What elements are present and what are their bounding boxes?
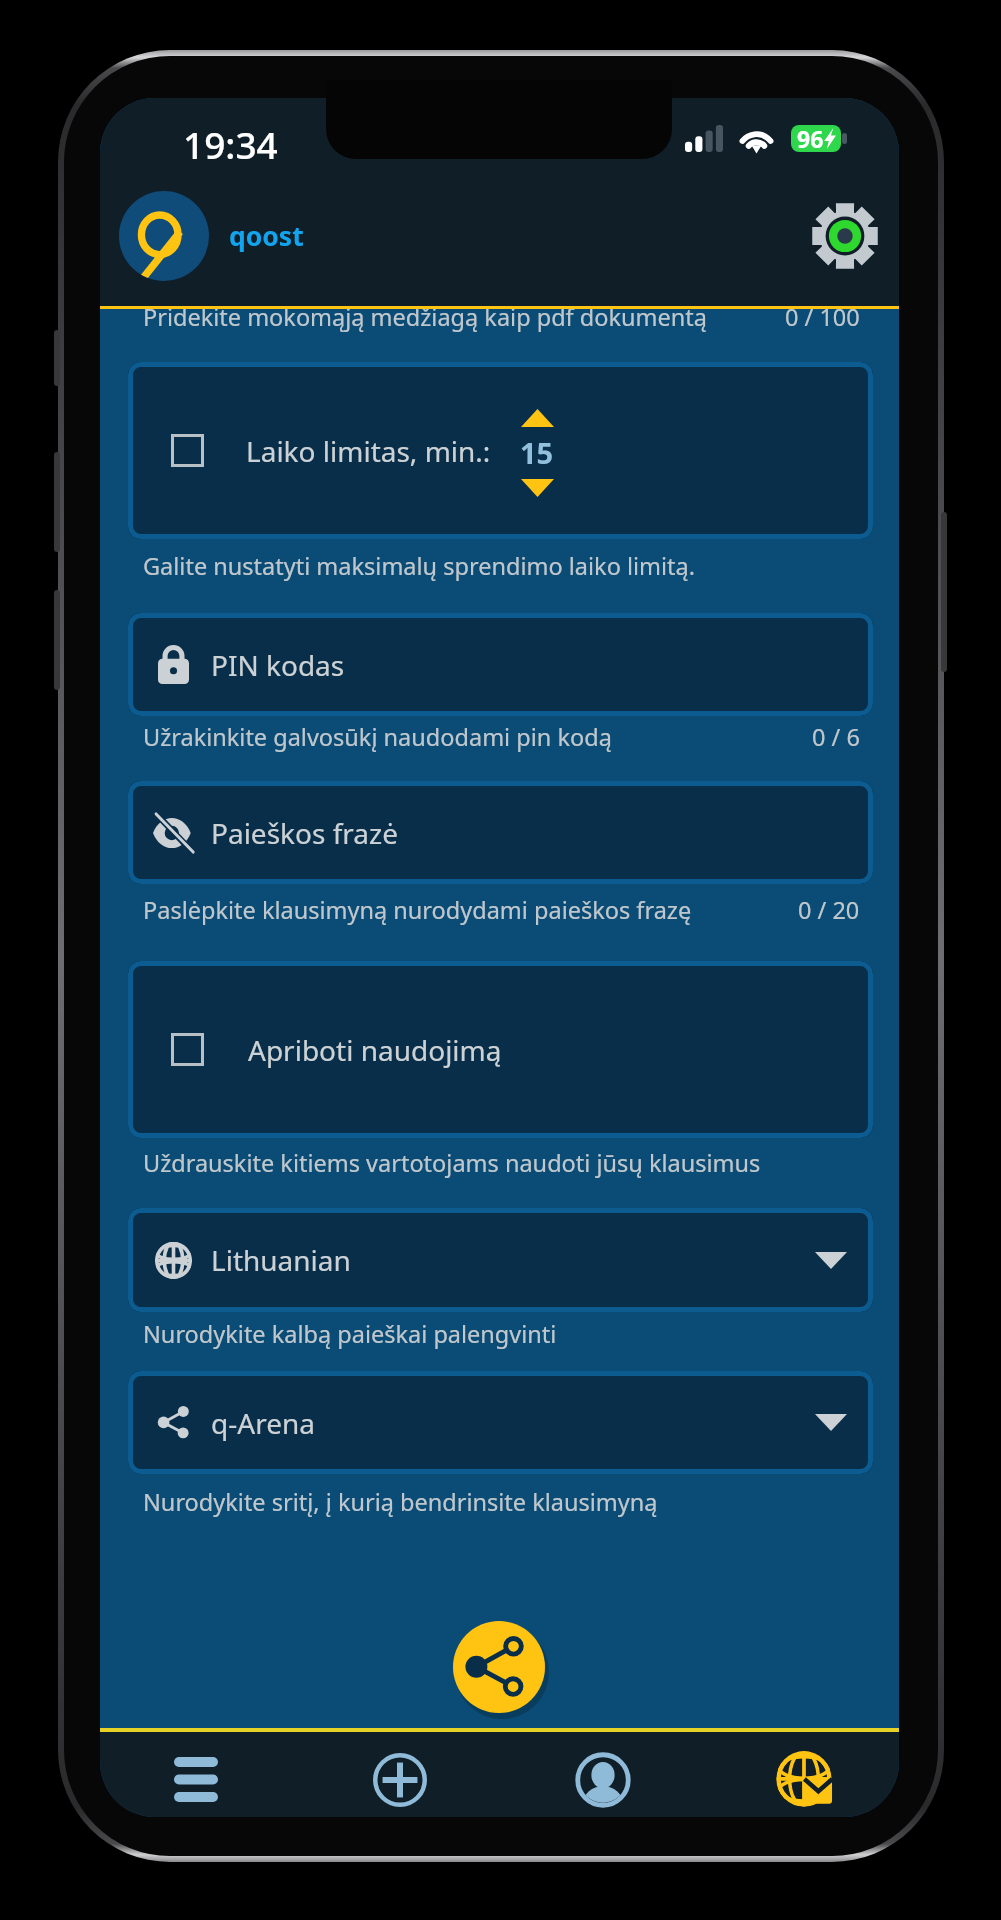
button[interactable]: Checkbox bbox=[171, 434, 204, 467]
button[interactable]: Settings bbox=[803, 194, 887, 278]
staticText: 0 / 6 bbox=[812, 721, 860, 753]
staticText: Užrakinkite galvosūkį naudodami pin kodą bbox=[143, 721, 612, 753]
button[interactable]: PIN kodas bbox=[128, 613, 873, 716]
button[interactable]: Checkbox bbox=[128, 362, 873, 539]
button[interactable]: Checkbox bbox=[171, 1033, 204, 1066]
button[interactable]: Lithuanian bbox=[128, 1208, 873, 1312]
staticText: Nurodykite kalbą paieškai palengvinti bbox=[143, 1318, 557, 1350]
staticText: Lithuanian bbox=[211, 1241, 351, 1279]
staticText: Laiko limitas, min.: bbox=[246, 432, 491, 470]
button[interactable]: Add bbox=[350, 1737, 450, 1817]
button[interactable]: Paieškos frazė bbox=[128, 781, 873, 884]
staticText: Nurodykite sritį, į kurią bendrinsite kl… bbox=[143, 1486, 658, 1518]
staticText: Apriboti naudojimą bbox=[248, 1031, 502, 1069]
staticText: 0 / 20 bbox=[798, 894, 860, 926]
staticText: 96 bbox=[797, 123, 824, 154]
staticText: Galite nustatyti maksimalų sprendimo lai… bbox=[143, 550, 696, 582]
staticText: Uždrauskite kitiems vartotojams naudoti … bbox=[143, 1147, 761, 1179]
button[interactable]: Menu bbox=[146, 1737, 246, 1817]
staticText: 15 bbox=[520, 433, 554, 472]
button[interactable]: Open dropdown bbox=[815, 1252, 847, 1269]
button[interactable]: qoost bbox=[119, 191, 304, 281]
staticText: PIN kodas bbox=[211, 646, 345, 684]
button[interactable]: Profile bbox=[553, 1737, 653, 1817]
staticText: 0 / 100 bbox=[785, 301, 860, 333]
button[interactable]: q-Arena bbox=[128, 1371, 873, 1474]
staticText: 19:34 bbox=[183, 119, 278, 169]
button[interactable]: Increase bbox=[521, 409, 554, 427]
staticText: Paieškos frazė bbox=[211, 814, 398, 852]
button[interactable]: Decrease bbox=[521, 479, 554, 497]
staticText: q-Arena bbox=[211, 1404, 315, 1442]
button[interactable]: Checkbox bbox=[128, 961, 873, 1138]
button[interactable]: Open dropdown bbox=[815, 1414, 847, 1431]
staticText: qoost bbox=[229, 218, 304, 254]
button[interactable]: Community bbox=[755, 1737, 855, 1817]
button[interactable]: Share bbox=[453, 1621, 545, 1713]
staticText: Pridekite mokomąją medžiagą kaip pdf dok… bbox=[143, 301, 707, 333]
staticText: Paslėpkite klausimyną nurodydami paieško… bbox=[143, 894, 692, 926]
